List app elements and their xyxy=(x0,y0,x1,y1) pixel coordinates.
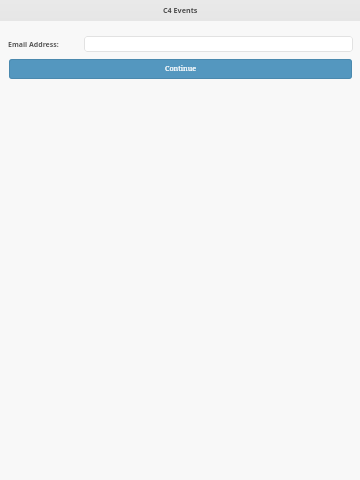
button[interactable]: Continue xyxy=(9,59,352,79)
staticText: C4 Events xyxy=(163,5,198,15)
staticText: Email Address: xyxy=(8,40,59,50)
staticText: Continue xyxy=(165,63,197,73)
button[interactable]: Email Address input xyxy=(84,36,353,52)
